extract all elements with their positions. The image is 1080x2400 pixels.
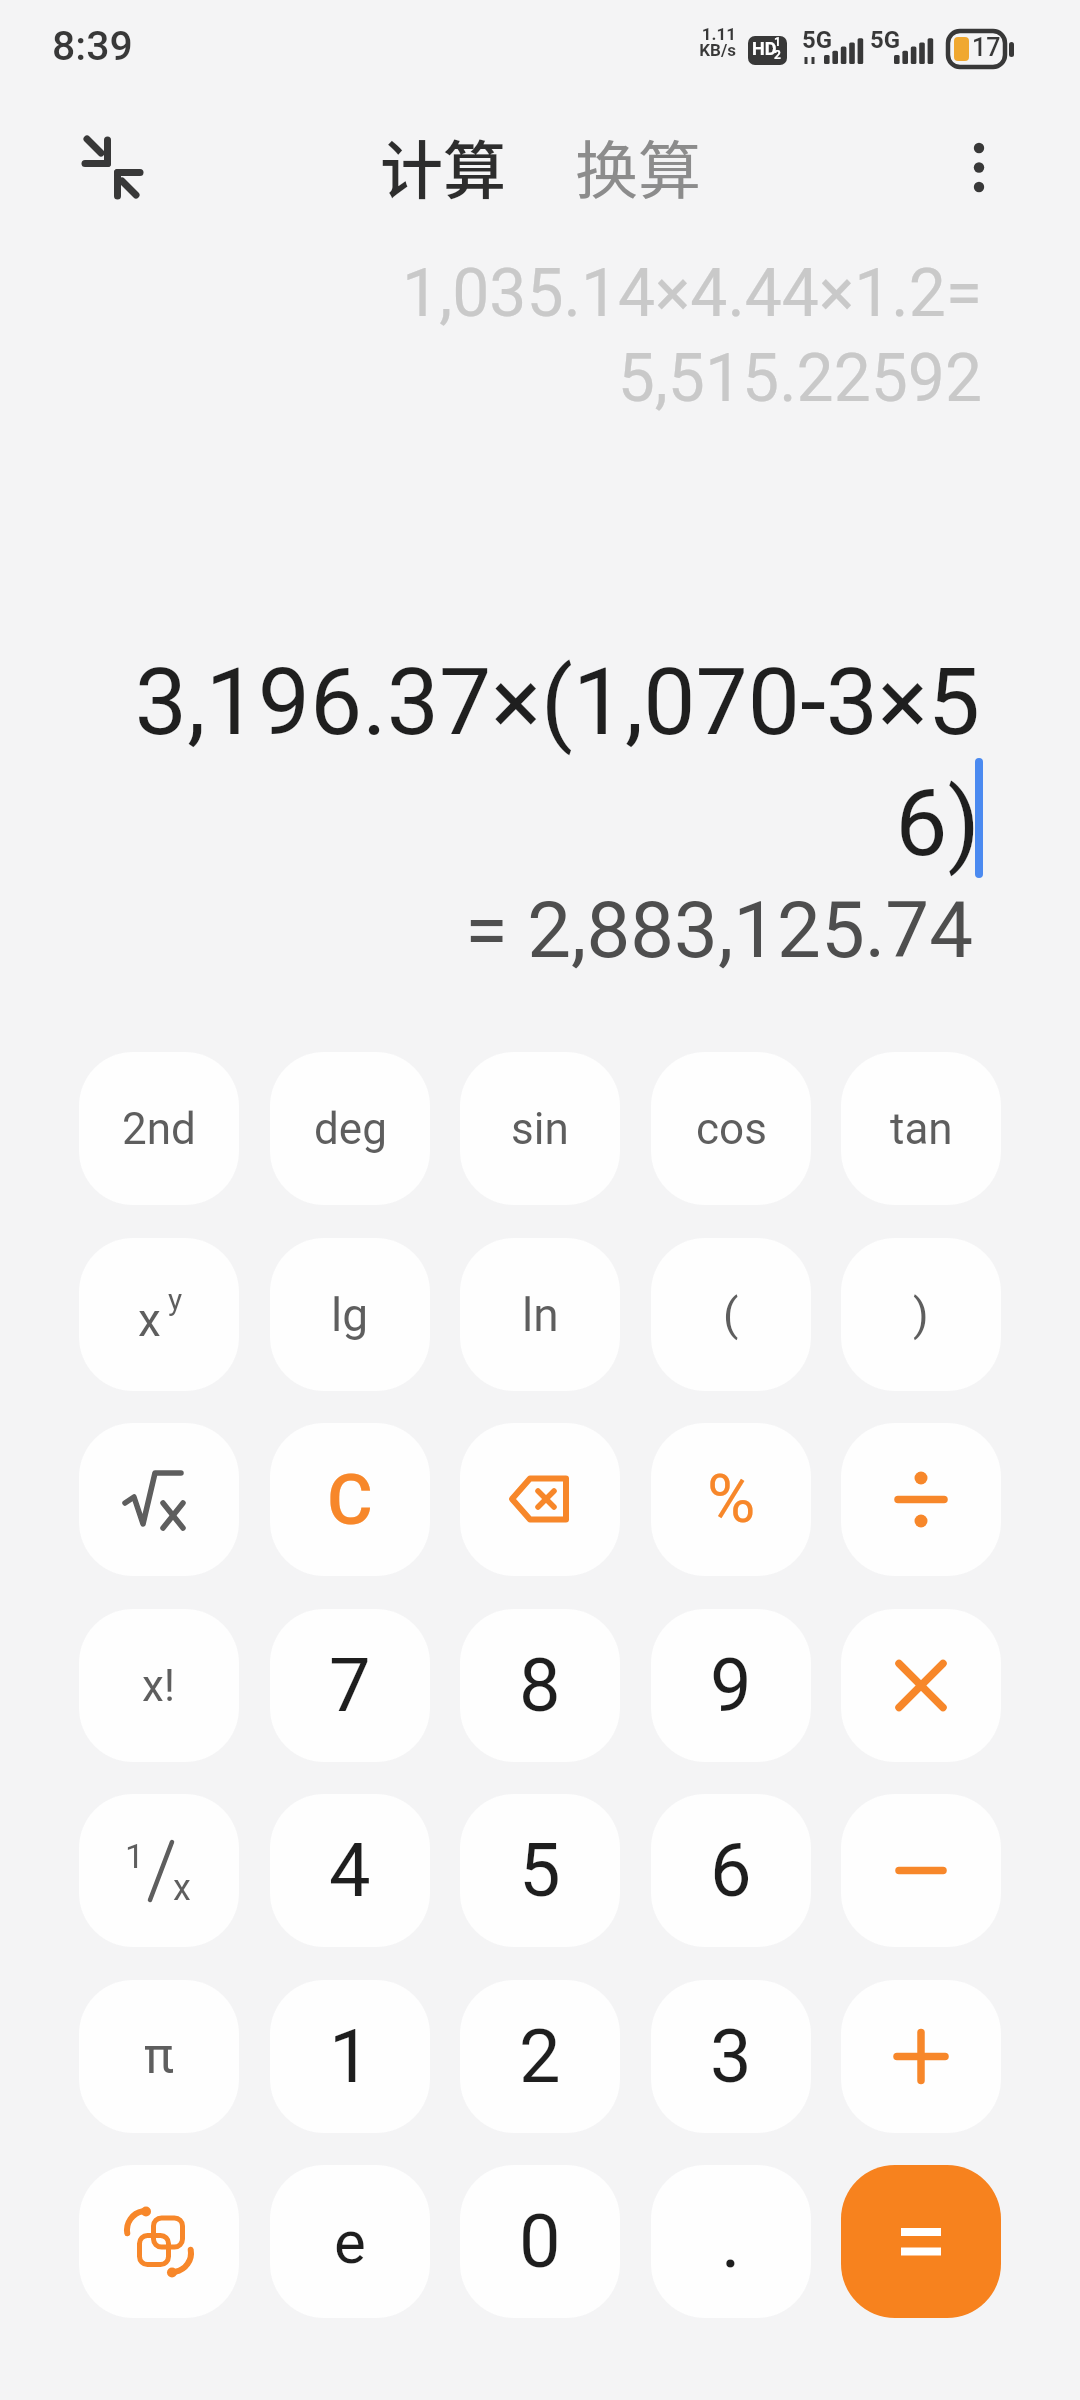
button[interactable]: deg [270, 1052, 430, 1205]
button[interactable]: x! [79, 1609, 239, 1762]
staticText: 8:39 [52, 22, 133, 70]
staticText: 6 [710, 1827, 752, 1914]
staticText: deg [314, 1103, 387, 1155]
staticText: sin [511, 1103, 569, 1155]
staticText: 3 [710, 2013, 752, 2100]
button[interactable]: . [651, 2165, 811, 2318]
button[interactable] [940, 125, 1020, 205]
staticText: 2 [519, 2013, 561, 2100]
staticText: 1,035.14×4.44×1.2= [0, 255, 982, 332]
staticText: 1 [329, 2013, 371, 2100]
button[interactable] [841, 1980, 1001, 2133]
staticText: 9 [710, 1642, 752, 1729]
button[interactable]: 3 [651, 1980, 811, 2133]
staticText: 1.11 KB/s [684, 24, 736, 61]
staticText: 5,515.22592 [0, 340, 982, 417]
staticText: ) [913, 1288, 929, 1341]
staticText: 5 [519, 1827, 561, 1914]
button[interactable]: 1 [270, 1980, 430, 2133]
staticText: 换算 [575, 120, 701, 211]
staticText: ln [522, 1288, 559, 1342]
staticText: 2 [774, 48, 781, 62]
button[interactable]: 4 [270, 1794, 430, 1947]
staticText: ( [723, 1288, 739, 1341]
button[interactable]: 0 [460, 2165, 620, 2318]
staticText: 2nd [122, 1103, 196, 1155]
staticText: π [144, 2027, 174, 2086]
staticText: 计算 [380, 120, 506, 211]
staticText: 5G [870, 26, 901, 54]
button[interactable]: % [651, 1423, 811, 1576]
staticText: e [334, 2207, 366, 2277]
button[interactable]: lg [270, 1238, 430, 1391]
staticText: 5G [802, 26, 833, 54]
button[interactable] [841, 1609, 1001, 1762]
button[interactable]: 换算 [565, 118, 710, 213]
staticText: 1 [774, 35, 781, 49]
staticText: x! [142, 1660, 176, 1712]
staticText: 7 [329, 1642, 371, 1729]
staticText: . [721, 2198, 741, 2285]
staticText: HD [752, 38, 777, 59]
button[interactable] [841, 2165, 1001, 2318]
button[interactable]: 2nd [79, 1052, 239, 1205]
button[interactable]: cos [651, 1052, 811, 1205]
staticText: lg [331, 1288, 369, 1342]
button[interactable] [460, 1423, 620, 1576]
button[interactable]: 5 [460, 1794, 620, 1947]
button[interactable]: 1 [79, 1794, 239, 1947]
staticText: = 2,883,125.74 [0, 885, 973, 976]
button[interactable]: 6 [651, 1794, 811, 1947]
button[interactable]: ln [460, 1238, 620, 1391]
button[interactable]: ) [841, 1238, 1001, 1391]
button[interactable] [70, 122, 160, 212]
button[interactable] [841, 1794, 1001, 1947]
button[interactable] [79, 2165, 239, 2318]
button[interactable]: ( [651, 1238, 811, 1391]
staticText: 3,196.37×(1,070-3×5 [0, 648, 980, 757]
button[interactable]: x [79, 1238, 239, 1391]
staticText: 8 [519, 1642, 561, 1729]
staticText: tan [890, 1103, 953, 1155]
button[interactable]: 8 [460, 1609, 620, 1762]
button[interactable]: π [79, 1980, 239, 2133]
button[interactable]: 计算 [370, 118, 515, 213]
button[interactable]: C [270, 1423, 430, 1576]
staticText: x [173, 1867, 191, 1909]
staticText: 17 [972, 33, 1001, 62]
button[interactable]: sin [460, 1052, 620, 1205]
button[interactable]: 7 [270, 1609, 430, 1762]
staticText: C [327, 1459, 373, 1541]
button[interactable]: 9 [651, 1609, 811, 1762]
staticText: % [707, 1461, 756, 1538]
staticText: 1 [125, 1836, 145, 1876]
staticText: x [138, 1293, 161, 1347]
staticText: 6) [0, 769, 980, 878]
staticText: 4 [329, 1827, 371, 1914]
button[interactable]: tan [841, 1052, 1001, 1205]
staticText: y [168, 1282, 183, 1317]
button[interactable] [79, 1423, 239, 1576]
staticText: cos [696, 1103, 767, 1155]
button[interactable] [841, 1423, 1001, 1576]
button[interactable]: e [270, 2165, 430, 2318]
staticText: 0 [519, 2198, 561, 2285]
button[interactable]: 2 [460, 1980, 620, 2133]
